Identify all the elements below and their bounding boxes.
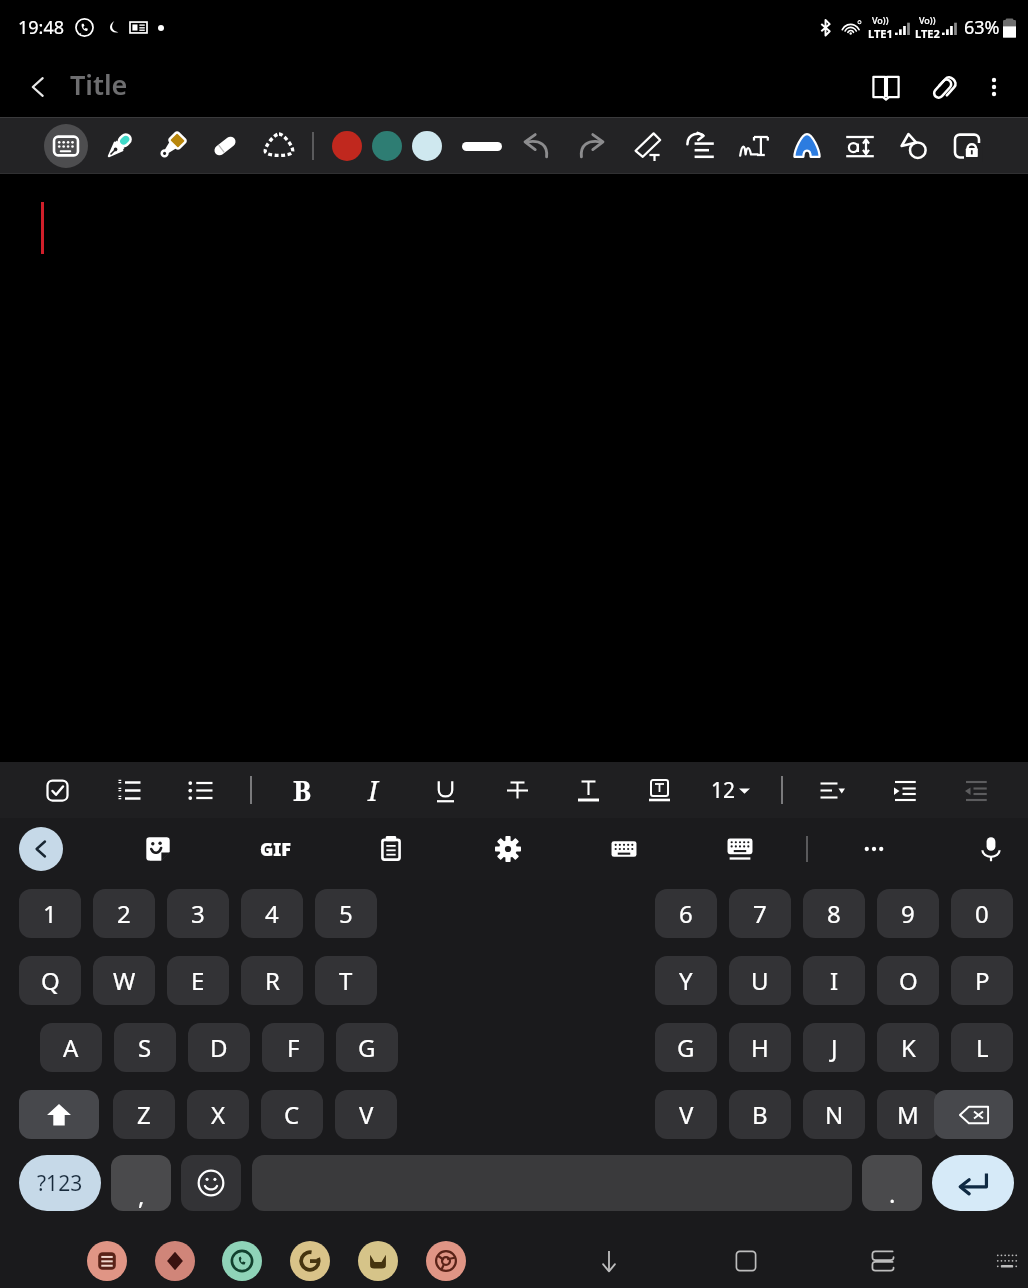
button[interactable]: Stroke width	[456, 132, 508, 160]
button[interactable]: C	[261, 1090, 323, 1139]
button[interactable]: Y	[655, 956, 717, 1005]
button[interactable]: Font size 12	[702, 772, 758, 808]
button[interactable]: Split keyboard	[718, 827, 762, 871]
button[interactable]: G	[336, 1023, 398, 1072]
button[interactable]: Attach	[917, 61, 969, 113]
button[interactable]: 2	[93, 889, 155, 938]
button[interactable]: W	[93, 956, 155, 1005]
button[interactable]: Highlight	[637, 768, 681, 812]
button[interactable]: B	[280, 768, 324, 812]
button[interactable]: Redo	[568, 123, 614, 169]
button[interactable]: Shapes	[890, 123, 936, 169]
button[interactable]: Stickers	[136, 827, 180, 871]
button[interactable]: Undo	[514, 123, 560, 169]
button[interactable]: App	[358, 1241, 398, 1281]
button[interactable]: Colour	[367, 126, 407, 166]
button[interactable]: Bulleted list	[178, 768, 222, 812]
button[interactable]: F	[262, 1023, 324, 1072]
button[interactable]: 6	[655, 889, 717, 938]
button[interactable]: O	[877, 956, 939, 1005]
button[interactable]: Reading mode	[860, 61, 912, 113]
button[interactable]: Numbered list	[106, 768, 150, 812]
button[interactable]: Outdent	[953, 768, 997, 812]
button[interactable]: Keyboard modes	[602, 827, 646, 871]
button[interactable]: 1	[19, 889, 81, 938]
button[interactable]: R	[241, 956, 303, 1005]
button[interactable]: Back	[12, 61, 64, 113]
button[interactable]: ?123	[19, 1155, 101, 1211]
button[interactable]: V	[335, 1090, 397, 1139]
button[interactable]: 4	[241, 889, 303, 938]
button[interactable]: GIF	[249, 829, 301, 869]
button[interactable]: Eraser	[202, 123, 248, 169]
button[interactable]: App	[426, 1241, 466, 1281]
button[interactable]: 5	[315, 889, 377, 938]
button[interactable]: Underline	[423, 768, 467, 812]
button[interactable]: Text size	[837, 123, 883, 169]
button[interactable]: G	[655, 1023, 717, 1072]
button[interactable]: ,	[111, 1155, 171, 1211]
button[interactable]: T	[315, 956, 377, 1005]
button[interactable]: N	[803, 1090, 865, 1139]
button[interactable]: Emoji	[181, 1155, 241, 1211]
button[interactable]: Shift	[19, 1090, 99, 1139]
button[interactable]: S	[114, 1023, 176, 1072]
button[interactable]: Z	[113, 1090, 175, 1139]
button[interactable]: J	[803, 1023, 865, 1072]
button[interactable]: Settings	[486, 827, 530, 871]
button[interactable]: Highlighter	[149, 123, 195, 169]
button[interactable]: Note body	[0, 174, 1028, 762]
button[interactable]: 0	[951, 889, 1013, 938]
button[interactable]: M	[877, 1090, 939, 1139]
button[interactable]: Colour	[327, 126, 367, 166]
button[interactable]: Colour	[407, 126, 447, 166]
button[interactable]: Indent	[882, 768, 926, 812]
button[interactable]: K	[877, 1023, 939, 1072]
button[interactable]: I	[803, 956, 865, 1005]
button[interactable]: Backspace	[934, 1090, 1013, 1139]
button[interactable]: B	[729, 1090, 791, 1139]
button[interactable]: Straighten	[677, 123, 723, 169]
button[interactable]: Text colour	[566, 768, 610, 812]
button[interactable]: H	[729, 1023, 791, 1072]
button[interactable]: Recents	[861, 1239, 905, 1283]
button[interactable]: Close keyboard panel	[19, 827, 63, 871]
button[interactable]: I	[351, 768, 395, 812]
button[interactable]: Lock	[944, 123, 990, 169]
button[interactable]: Voice input	[969, 827, 1013, 871]
button[interactable]: 9	[877, 889, 939, 938]
button[interactable]: E	[167, 956, 229, 1005]
button[interactable]: P	[951, 956, 1013, 1005]
button[interactable]: App	[87, 1241, 127, 1281]
button[interactable]: Pen	[96, 123, 142, 169]
button[interactable]: Keyboard	[44, 124, 88, 168]
button[interactable]: App	[155, 1241, 195, 1281]
button[interactable]: Hide keyboard	[587, 1239, 631, 1283]
button[interactable]: App	[222, 1241, 262, 1281]
button[interactable]: .	[862, 1155, 922, 1211]
button[interactable]: Alignment	[810, 768, 854, 812]
button[interactable]: 8	[803, 889, 865, 938]
button[interactable]: Q	[19, 956, 81, 1005]
button[interactable]: Checklist	[35, 768, 79, 812]
button[interactable]: Convert to text	[731, 123, 777, 169]
button[interactable]: App	[290, 1241, 330, 1281]
button[interactable]: A	[40, 1023, 102, 1072]
button[interactable]: Strikethrough	[495, 768, 539, 812]
button[interactable]: U	[729, 956, 791, 1005]
button[interactable]: X	[187, 1090, 249, 1139]
button[interactable]: Selection	[256, 123, 302, 169]
button[interactable]: Home	[724, 1239, 768, 1283]
button[interactable]: 7	[729, 889, 791, 938]
button[interactable]: Enter	[932, 1155, 1014, 1211]
button[interactable]: Keyboard	[987, 1241, 1027, 1281]
button[interactable]: V	[655, 1090, 717, 1139]
button[interactable]: D	[188, 1023, 250, 1072]
button[interactable]: Assistant	[784, 123, 830, 169]
button[interactable]: Pen settings	[624, 123, 670, 169]
button[interactable]: More	[852, 827, 896, 871]
button[interactable]: Clipboard	[369, 827, 413, 871]
button[interactable]: L	[951, 1023, 1013, 1072]
button[interactable]: 3	[167, 889, 229, 938]
